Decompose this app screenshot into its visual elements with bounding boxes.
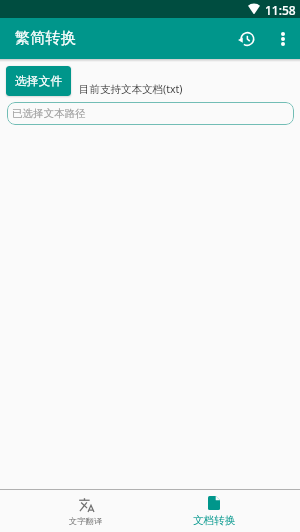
button[interactable]: 文字翻译 xyxy=(22,490,150,532)
button[interactable]: 选择文件 xyxy=(6,66,71,96)
button[interactable]: History xyxy=(230,18,262,59)
staticText: 选择文件 xyxy=(15,74,63,89)
staticText: 已选择文本路径 xyxy=(12,107,86,120)
staticText: 11:58 xyxy=(265,2,296,18)
staticText: 文字翻译 xyxy=(69,516,103,526)
staticText: 文档转换 xyxy=(193,514,236,527)
staticText: 目前支持文本文档(txt) xyxy=(79,82,183,96)
button[interactable]: 已选择文本路径 xyxy=(7,102,294,125)
button[interactable]: More options xyxy=(267,18,299,59)
staticText: 繁简转换 xyxy=(15,28,76,47)
button[interactable]: 文档转换 xyxy=(150,490,278,532)
